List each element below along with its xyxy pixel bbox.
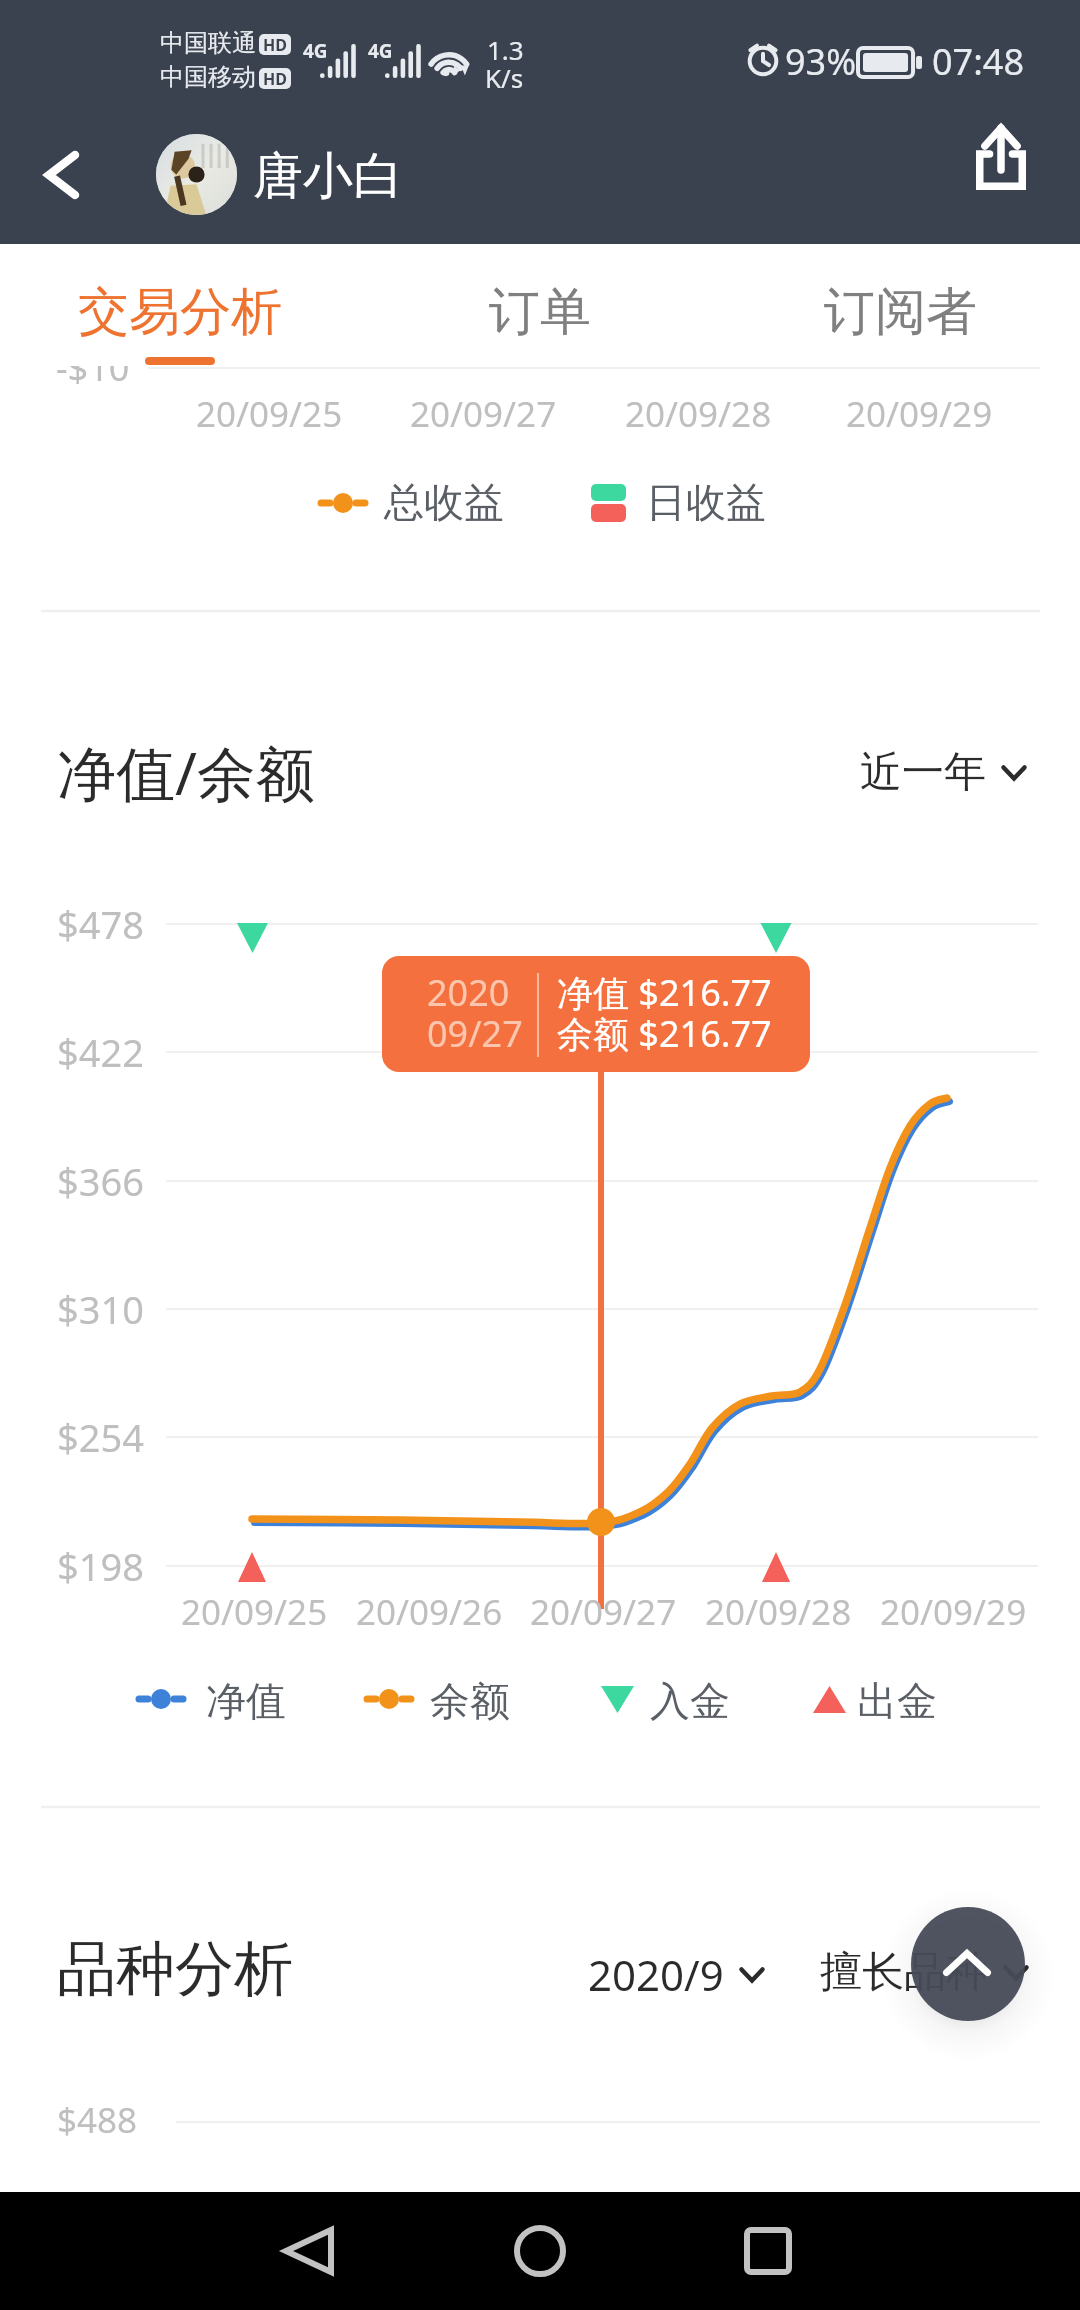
staticText: 净值/余额 — [57, 732, 315, 813]
staticText: HD — [263, 34, 287, 55]
button[interactable]: Back — [8, 105, 118, 244]
staticText: K/s — [485, 60, 524, 95]
staticText: 20/09/25 — [196, 390, 343, 438]
staticText: 唐小白 — [253, 145, 403, 208]
button[interactable]: 近一年 — [860, 746, 1026, 799]
staticText: 总收益 — [384, 477, 504, 527]
button[interactable]: Recents — [678, 2192, 858, 2310]
staticText: 出金 — [857, 1676, 937, 1726]
staticText: $422 — [57, 1026, 144, 1078]
staticText: 93% — [785, 37, 857, 86]
staticText: 订单 — [489, 280, 591, 344]
staticText: 20/09/25 — [181, 1588, 328, 1636]
staticText: 入金 — [650, 1676, 730, 1726]
button[interactable]: 出金 — [813, 1676, 953, 1726]
staticText: 擅长品种 — [820, 1946, 988, 1999]
button[interactable]: 擅长品种 — [820, 1946, 1028, 1999]
staticText: 净值 — [206, 1676, 286, 1726]
staticText: 07:48 — [932, 37, 1025, 86]
button[interactable]: 2020/9 — [588, 1946, 764, 2003]
staticText: HD — [263, 68, 287, 89]
staticText: 中国移动 — [160, 62, 256, 92]
staticText: 20/09/26 — [356, 1588, 503, 1636]
staticText: 品种分析 — [57, 1932, 293, 2006]
staticText: 20/09/29 — [846, 390, 993, 438]
staticText: $198 — [57, 1540, 144, 1592]
button[interactable]: Home — [450, 2192, 630, 2310]
staticText: 20/09/27 — [530, 1588, 677, 1636]
staticText: 20/09/28 — [705, 1588, 852, 1636]
button[interactable]: 净值 — [136, 1676, 296, 1726]
staticText: 1.3 — [487, 32, 524, 67]
staticText: 20/09/27 — [410, 390, 557, 438]
staticText: -$10 — [56, 343, 130, 392]
staticText: 2020 — [427, 968, 510, 1017]
staticText: $254 — [57, 1411, 144, 1463]
staticText: 2020/9 — [588, 1946, 724, 2003]
staticText: 订阅者 — [824, 280, 977, 344]
staticText: 09/27 — [427, 1009, 523, 1058]
staticText: 净值 $216.77 — [557, 968, 772, 1017]
staticText: $310 — [57, 1283, 144, 1335]
staticText: $478 — [57, 898, 144, 950]
staticText: 中国联通 — [160, 28, 256, 58]
button[interactable]: Back — [218, 2192, 398, 2310]
staticText: 4G — [303, 38, 328, 64]
staticText: $488 — [57, 2096, 138, 2144]
staticText: 日收益 — [646, 477, 766, 527]
staticText: $366 — [57, 1155, 144, 1207]
button[interactable]: 交易分析 — [0, 244, 360, 366]
button[interactable]: 余额 — [364, 1676, 524, 1726]
button[interactable]: 订单 — [360, 244, 720, 366]
button[interactable]: Share — [942, 114, 1062, 234]
button[interactable]: 订阅者 — [720, 244, 1080, 366]
button[interactable]: Scroll to top — [911, 1907, 1025, 2021]
staticText: 余额 — [430, 1676, 510, 1726]
staticText: 4G — [368, 38, 393, 64]
staticText: 近一年 — [860, 746, 986, 799]
staticText: 余额 $216.77 — [557, 1009, 772, 1058]
staticText: 交易分析 — [78, 280, 282, 344]
staticText: 20/09/29 — [880, 1588, 1027, 1636]
button[interactable]: 入金 — [601, 1676, 741, 1726]
staticText: 20/09/28 — [625, 390, 772, 438]
